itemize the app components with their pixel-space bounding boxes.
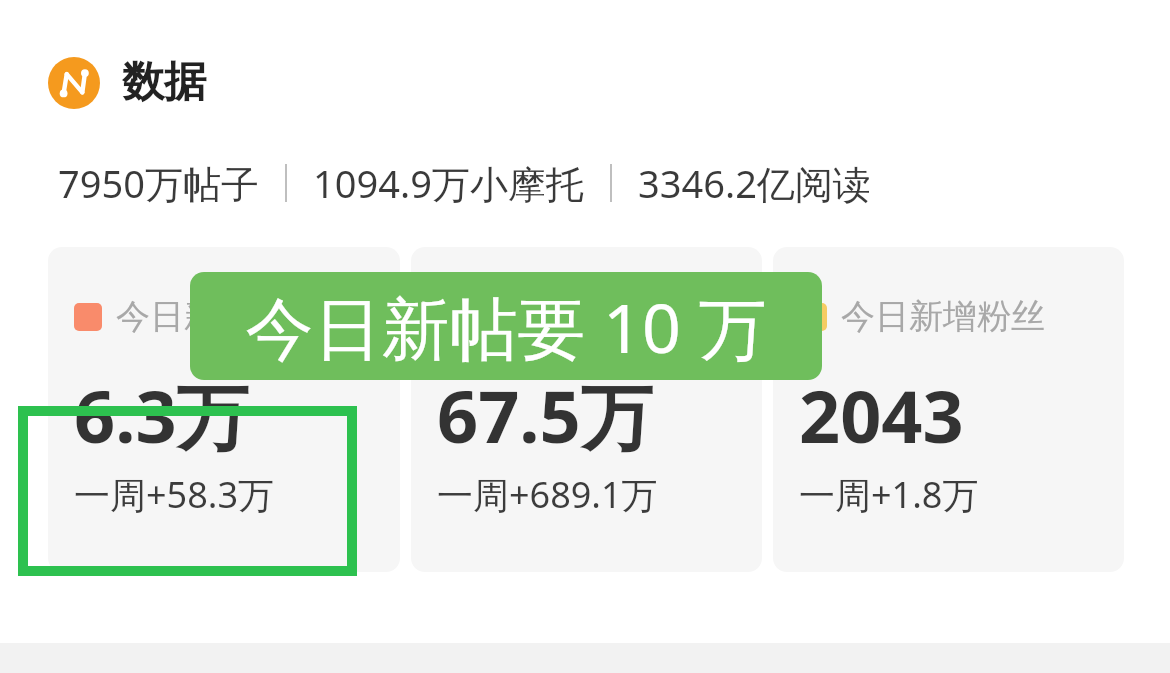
button[interactable]: 今日新帖要 10 万 [190, 272, 822, 380]
staticText: 6.3万 [74, 366, 249, 464]
staticText: 今日新回复 [479, 295, 649, 338]
staticText: 今日新帖 [116, 295, 252, 338]
other: 数据 app icon [48, 57, 100, 109]
staticText: 一周+1.8万 [799, 470, 979, 519]
staticText: 一周+689.1万 [437, 470, 658, 519]
staticText: 一周+58.3万 [74, 470, 275, 519]
staticText: 1094.9万小摩托 [313, 157, 584, 209]
button[interactable] [18, 406, 357, 576]
button[interactable]: 数据 app icon [48, 56, 1170, 109]
staticText: 2043 [799, 366, 964, 464]
button[interactable]: 今日新回复 [411, 247, 762, 572]
button[interactable]: 今日新帖 [48, 247, 400, 572]
staticText: 今日新增粉丝 [841, 295, 1045, 338]
staticText: 3346.2亿阅读 [638, 157, 871, 209]
staticText: 67.5万 [437, 366, 653, 464]
staticText: 今日新帖要 10 万 [245, 280, 767, 373]
button[interactable]: 今日新增粉丝 [773, 247, 1124, 572]
staticText: 7950万帖子 [58, 157, 259, 209]
staticText: 数据 [122, 56, 206, 109]
